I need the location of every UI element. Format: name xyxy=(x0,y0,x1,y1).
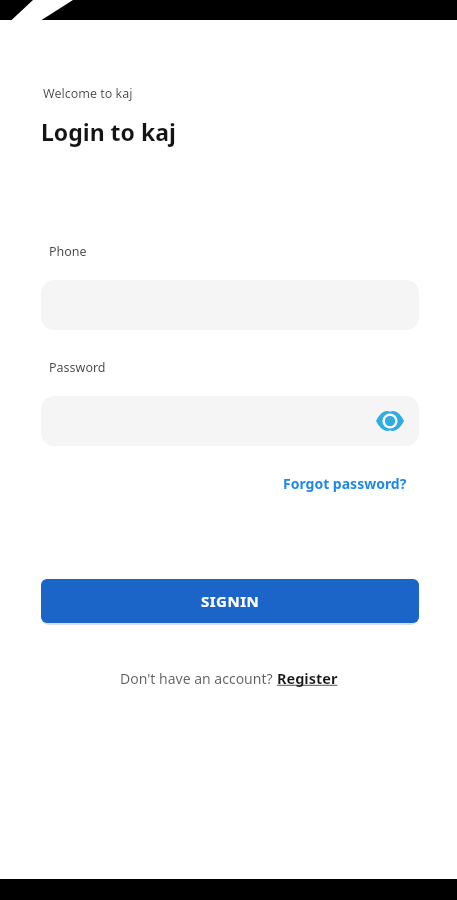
staticText: SIGNIN xyxy=(201,591,260,611)
staticText: Forgot password? xyxy=(283,474,407,493)
staticText: Login to kaj xyxy=(41,116,176,147)
staticText: Phone xyxy=(49,243,87,260)
staticText: Welcome to kaj xyxy=(43,85,133,102)
button[interactable]: Register xyxy=(277,668,338,688)
button[interactable] xyxy=(41,396,419,446)
button[interactable] xyxy=(375,406,405,436)
staticText: Register xyxy=(277,668,338,688)
button[interactable]: SIGNIN xyxy=(41,579,419,623)
button[interactable]: Forgot password? xyxy=(283,474,407,493)
staticText: Password xyxy=(49,359,106,376)
staticText: Don't have an account? xyxy=(120,669,277,688)
